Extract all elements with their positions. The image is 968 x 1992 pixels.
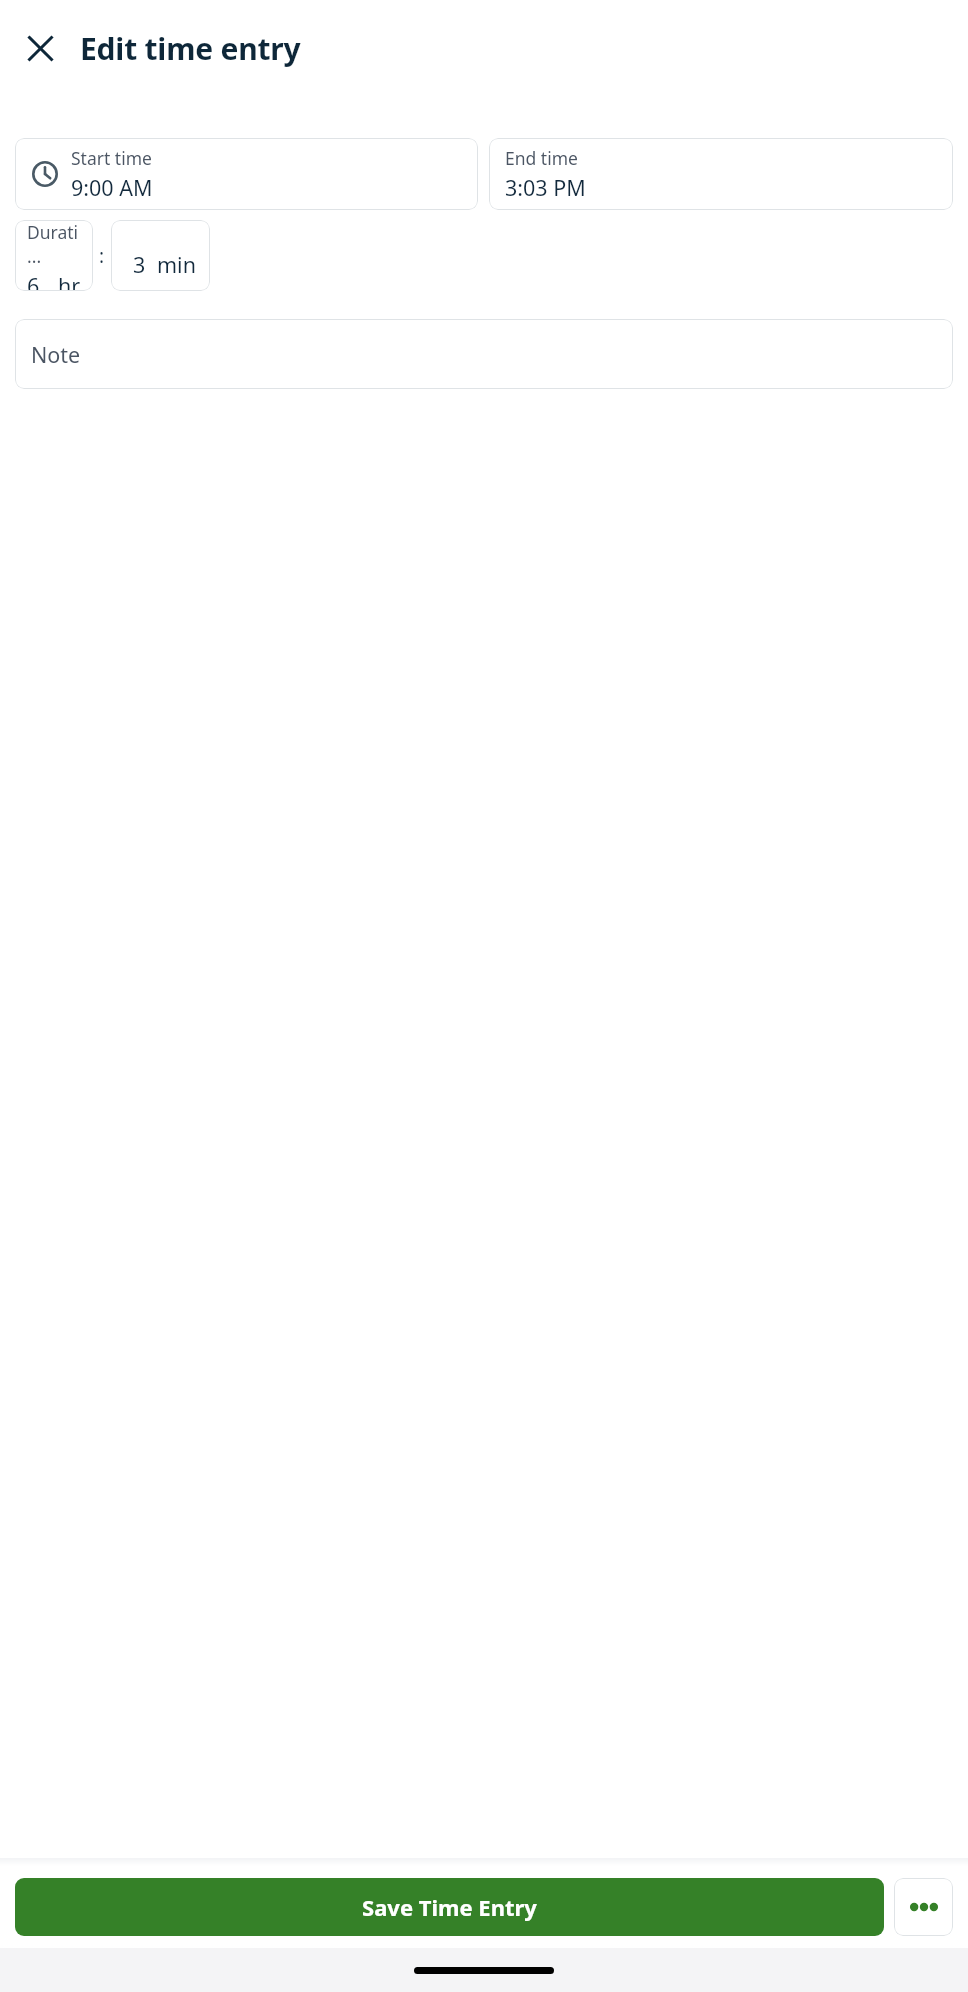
staticText: 6 <box>27 271 40 291</box>
staticText: Durati... <box>27 220 81 268</box>
button[interactable]: Note <box>15 319 953 389</box>
button[interactable]: Save Time Entry <box>15 1878 884 1936</box>
staticText: Edit time entry <box>80 28 301 69</box>
staticText: 9:00 AM <box>71 173 153 202</box>
staticText: : <box>99 243 105 269</box>
staticText: 3 <box>133 250 146 279</box>
staticText: 3:03 PM <box>505 173 586 202</box>
staticText: Save Time Entry <box>362 1892 537 1922</box>
button[interactable]: More options <box>894 1878 953 1936</box>
button[interactable]: End time <box>489 138 953 210</box>
staticText: hr <box>58 271 81 291</box>
button[interactable]: Start time <box>15 138 478 210</box>
staticText: End time <box>505 146 578 170</box>
staticText: Start time <box>71 146 152 170</box>
staticText: min <box>157 250 196 279</box>
button[interactable]: Durati... <box>15 220 93 291</box>
staticText: Note <box>31 340 81 369</box>
button[interactable]: Close <box>12 20 68 76</box>
button[interactable]: 3 <box>111 220 210 291</box>
